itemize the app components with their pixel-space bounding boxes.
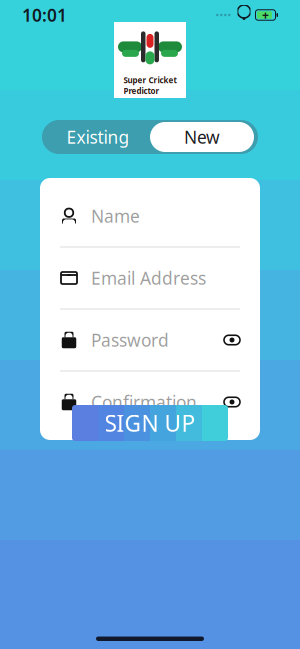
button[interactable]: Password [40, 309, 260, 370]
button[interactable]: Name [40, 185, 260, 246]
button[interactable]: Confirmation [40, 371, 260, 432]
staticText: SIGN UP [104, 408, 195, 438]
staticText: Password [91, 328, 169, 351]
button[interactable]: Existing [42, 120, 258, 154]
staticText: Email Address [91, 266, 206, 289]
staticText: Existing [66, 125, 129, 148]
button[interactable]: SIGN UP [72, 405, 228, 441]
staticText: Name [91, 204, 140, 227]
staticText: 10:01 [22, 3, 67, 26]
staticText: Confirmation [91, 390, 197, 413]
button[interactable]: Email Address [40, 247, 260, 308]
staticText: + [262, 7, 269, 23]
staticText: Super Cricket Predictor [123, 75, 176, 96]
staticText: New [184, 125, 220, 148]
